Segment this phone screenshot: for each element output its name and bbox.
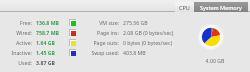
staticText: 4.00 GB bbox=[200, 57, 230, 64]
staticText: CPU bbox=[179, 4, 190, 11]
staticText: VM size: bbox=[89, 19, 119, 26]
staticText: 3.87 GB bbox=[36, 59, 68, 66]
staticText: System Memory bbox=[200, 4, 242, 11]
staticText: 1.64 GB bbox=[36, 39, 68, 46]
staticText: Used: bbox=[4, 59, 32, 66]
staticText: 403.8 MB bbox=[123, 49, 183, 56]
staticText: Inactive: bbox=[4, 49, 32, 56]
staticText: 2.08 GB (0 bytes/sec) bbox=[123, 29, 183, 36]
staticText: 0 bytes (0 bytes/sec) bbox=[123, 39, 183, 46]
staticText: 136.8 MB bbox=[36, 19, 68, 26]
staticText: Page ins: bbox=[89, 29, 119, 36]
staticText: Wired: bbox=[4, 29, 32, 36]
staticText: 1.45 GB bbox=[36, 49, 68, 56]
button[interactable]: System Memory bbox=[194, 2, 248, 12]
staticText: Active: bbox=[4, 39, 32, 46]
staticText: Free: bbox=[4, 19, 32, 26]
button[interactable]: CPU bbox=[175, 2, 194, 12]
staticText: 758.7 MB bbox=[36, 29, 68, 36]
staticText: 275.56 GB bbox=[123, 19, 183, 26]
staticText: Swap used: bbox=[89, 49, 119, 56]
staticText: Page outs: bbox=[89, 39, 119, 46]
